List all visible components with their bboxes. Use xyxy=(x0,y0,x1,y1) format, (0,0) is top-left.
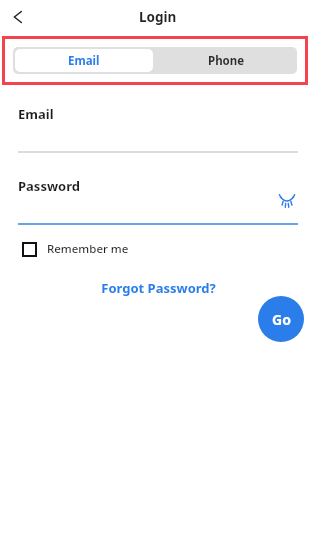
staticText: Go xyxy=(272,310,291,329)
button[interactable]: Go xyxy=(258,296,304,342)
staticText: Email xyxy=(18,105,54,123)
button[interactable]: Remember me xyxy=(18,239,137,259)
staticText: Login xyxy=(139,8,177,26)
button[interactable]: Back xyxy=(5,4,31,30)
button[interactable]: Email xyxy=(15,49,153,72)
staticText: Forgot Password? xyxy=(101,279,216,297)
staticText: Email xyxy=(68,53,100,69)
button[interactable]: Phone xyxy=(155,47,297,74)
staticText: Phone xyxy=(208,53,245,69)
staticText: Password xyxy=(18,177,80,195)
button[interactable]: Forgot Password? xyxy=(95,276,222,300)
staticText: Remember me xyxy=(47,241,129,257)
button[interactable]: Show password xyxy=(276,189,298,211)
